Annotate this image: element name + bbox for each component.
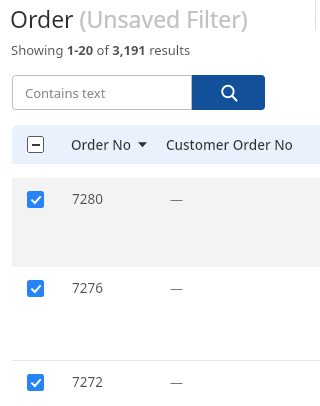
staticText: Contains text [25,84,106,102]
staticText: Customer Order No [166,136,293,154]
staticText: 7276 [72,279,103,297]
button[interactable]: Contains text [12,75,192,110]
button[interactable]: Select order 7272 [12,361,58,403]
staticText: Order (Unsaved Filter) [10,3,248,33]
button[interactable]: Order No [71,125,147,164]
staticText: 7272 [72,373,103,391]
staticText: Showing 1-20 of 3,191 results [11,41,191,59]
button[interactable]: Select all [12,125,58,164]
button[interactable]: Select order 7276 [12,267,320,360]
staticText: — [170,279,184,297]
staticText: Order No [71,136,132,154]
button[interactable]: Select order 7280 [12,178,58,220]
button[interactable]: Select order 7280 [12,178,320,267]
button[interactable]: Select order 7276 [12,267,58,309]
staticText: — [170,373,184,391]
staticText: 7280 [72,190,103,208]
staticText: — [170,190,184,208]
button[interactable]: Search [192,75,265,110]
button[interactable]: Select order 7272 [12,361,320,406]
